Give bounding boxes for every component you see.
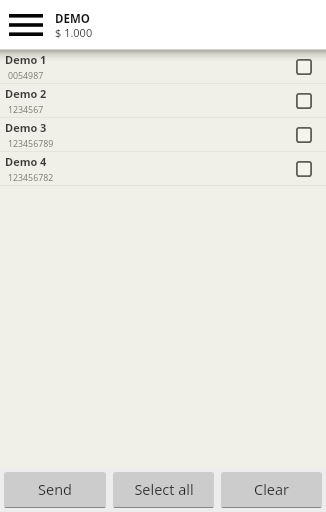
button[interactable]: Demo 4 <box>0 152 326 186</box>
button[interactable]: Select Demo 4 <box>296 161 312 177</box>
staticText: DEMO <box>55 11 90 27</box>
staticText: Select all <box>134 480 194 500</box>
button[interactable]: Select Demo 3 <box>296 127 312 143</box>
staticText: 0054987 <box>8 70 44 82</box>
button[interactable]: Demo 2 <box>0 84 326 118</box>
staticText: Demo 2 <box>5 86 47 101</box>
button[interactable]: Select Demo 1 <box>296 59 312 75</box>
button[interactable]: Clear <box>221 472 322 508</box>
staticText: $ 1.000 <box>55 25 93 40</box>
button[interactable]: Select Demo 2 <box>296 93 312 109</box>
button[interactable]: Send <box>4 472 106 508</box>
button[interactable]: Demo 1 <box>0 50 326 84</box>
staticText: Demo 3 <box>5 120 47 135</box>
staticText: 123456782 <box>8 172 54 184</box>
button[interactable]: Menu <box>9 7 43 43</box>
button[interactable]: Select all <box>113 472 214 508</box>
button[interactable]: Demo 3 <box>0 118 326 152</box>
staticText: 1234567 <box>8 104 44 116</box>
staticText: Send <box>38 480 72 500</box>
staticText: Clear <box>254 480 289 500</box>
staticText: Demo 1 <box>5 52 47 67</box>
staticText: 123456789 <box>8 138 54 150</box>
staticText: Demo 4 <box>5 154 47 169</box>
